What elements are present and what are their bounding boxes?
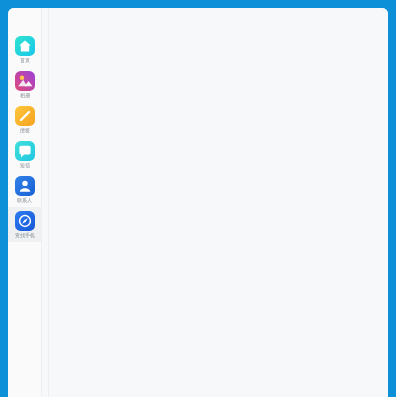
staticText: 短信 [20, 162, 30, 168]
staticText: 相册 [20, 92, 30, 98]
button[interactable]: Contacts [8, 172, 41, 207]
staticText: 首页 [20, 57, 30, 63]
button[interactable]: Album [8, 67, 41, 102]
button[interactable]: Find phone [8, 207, 41, 242]
button[interactable]: Home [8, 32, 41, 67]
button[interactable]: Notes [8, 102, 41, 137]
staticText: 便签 [20, 127, 30, 133]
staticText: 查找手机 [15, 232, 35, 238]
button[interactable]: Messages [8, 137, 41, 172]
staticText: 联系人 [17, 197, 32, 203]
